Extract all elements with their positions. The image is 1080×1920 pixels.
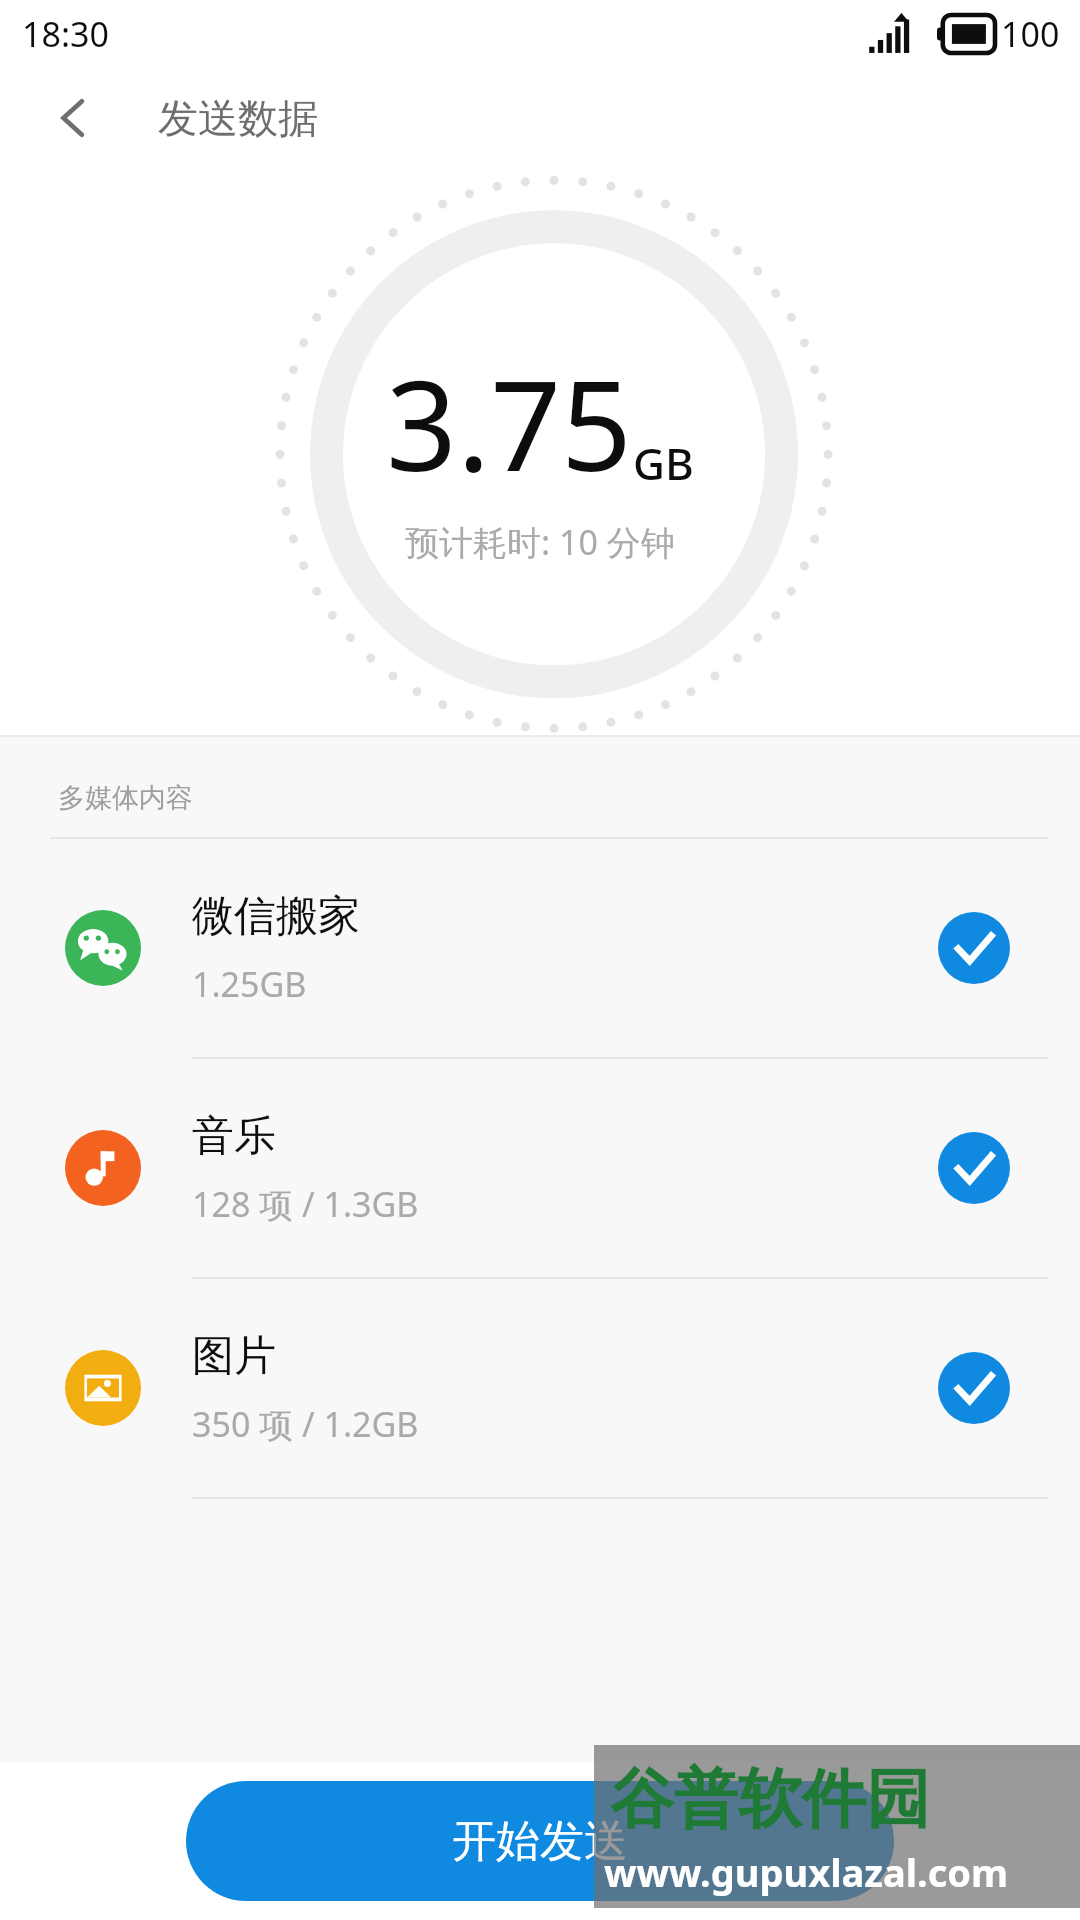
staticText: www.gupuxlazal.com (604, 1846, 1009, 1898)
staticText: 音乐 (192, 1110, 276, 1163)
button[interactable]: Back (36, 80, 112, 156)
button[interactable]: Selected 音乐 (932, 1126, 1016, 1210)
staticText: 1.25GB (192, 961, 307, 1007)
staticText: 3.75 (386, 338, 633, 507)
button[interactable]: 微信搬家 (0, 839, 1080, 1057)
button[interactable]: 开始发送 (186, 1781, 894, 1901)
button[interactable]: Selected 微信搬家 (932, 906, 1016, 990)
staticText: 预计耗时: 10 分钟 (405, 519, 675, 565)
button[interactable]: 图片 (0, 1279, 1080, 1497)
staticText: 350 项 / 1.2GB (192, 1401, 419, 1447)
staticText: 开始发送 (452, 1814, 628, 1869)
button[interactable]: 音乐 (0, 1059, 1080, 1277)
staticText: GB (633, 433, 694, 493)
staticText: 18:30 (22, 11, 109, 57)
staticText: 发送数据 (158, 93, 318, 143)
staticText: 100 (1001, 11, 1060, 57)
staticText: 微信搬家 (192, 890, 360, 943)
staticText: 图片 (192, 1330, 276, 1383)
staticText: 多媒体内容 (58, 781, 193, 815)
button[interactable]: Selected 图片 (932, 1346, 1016, 1430)
staticText: 128 项 / 1.3GB (192, 1181, 419, 1227)
staticText: 谷普软件园 (610, 1759, 930, 1840)
